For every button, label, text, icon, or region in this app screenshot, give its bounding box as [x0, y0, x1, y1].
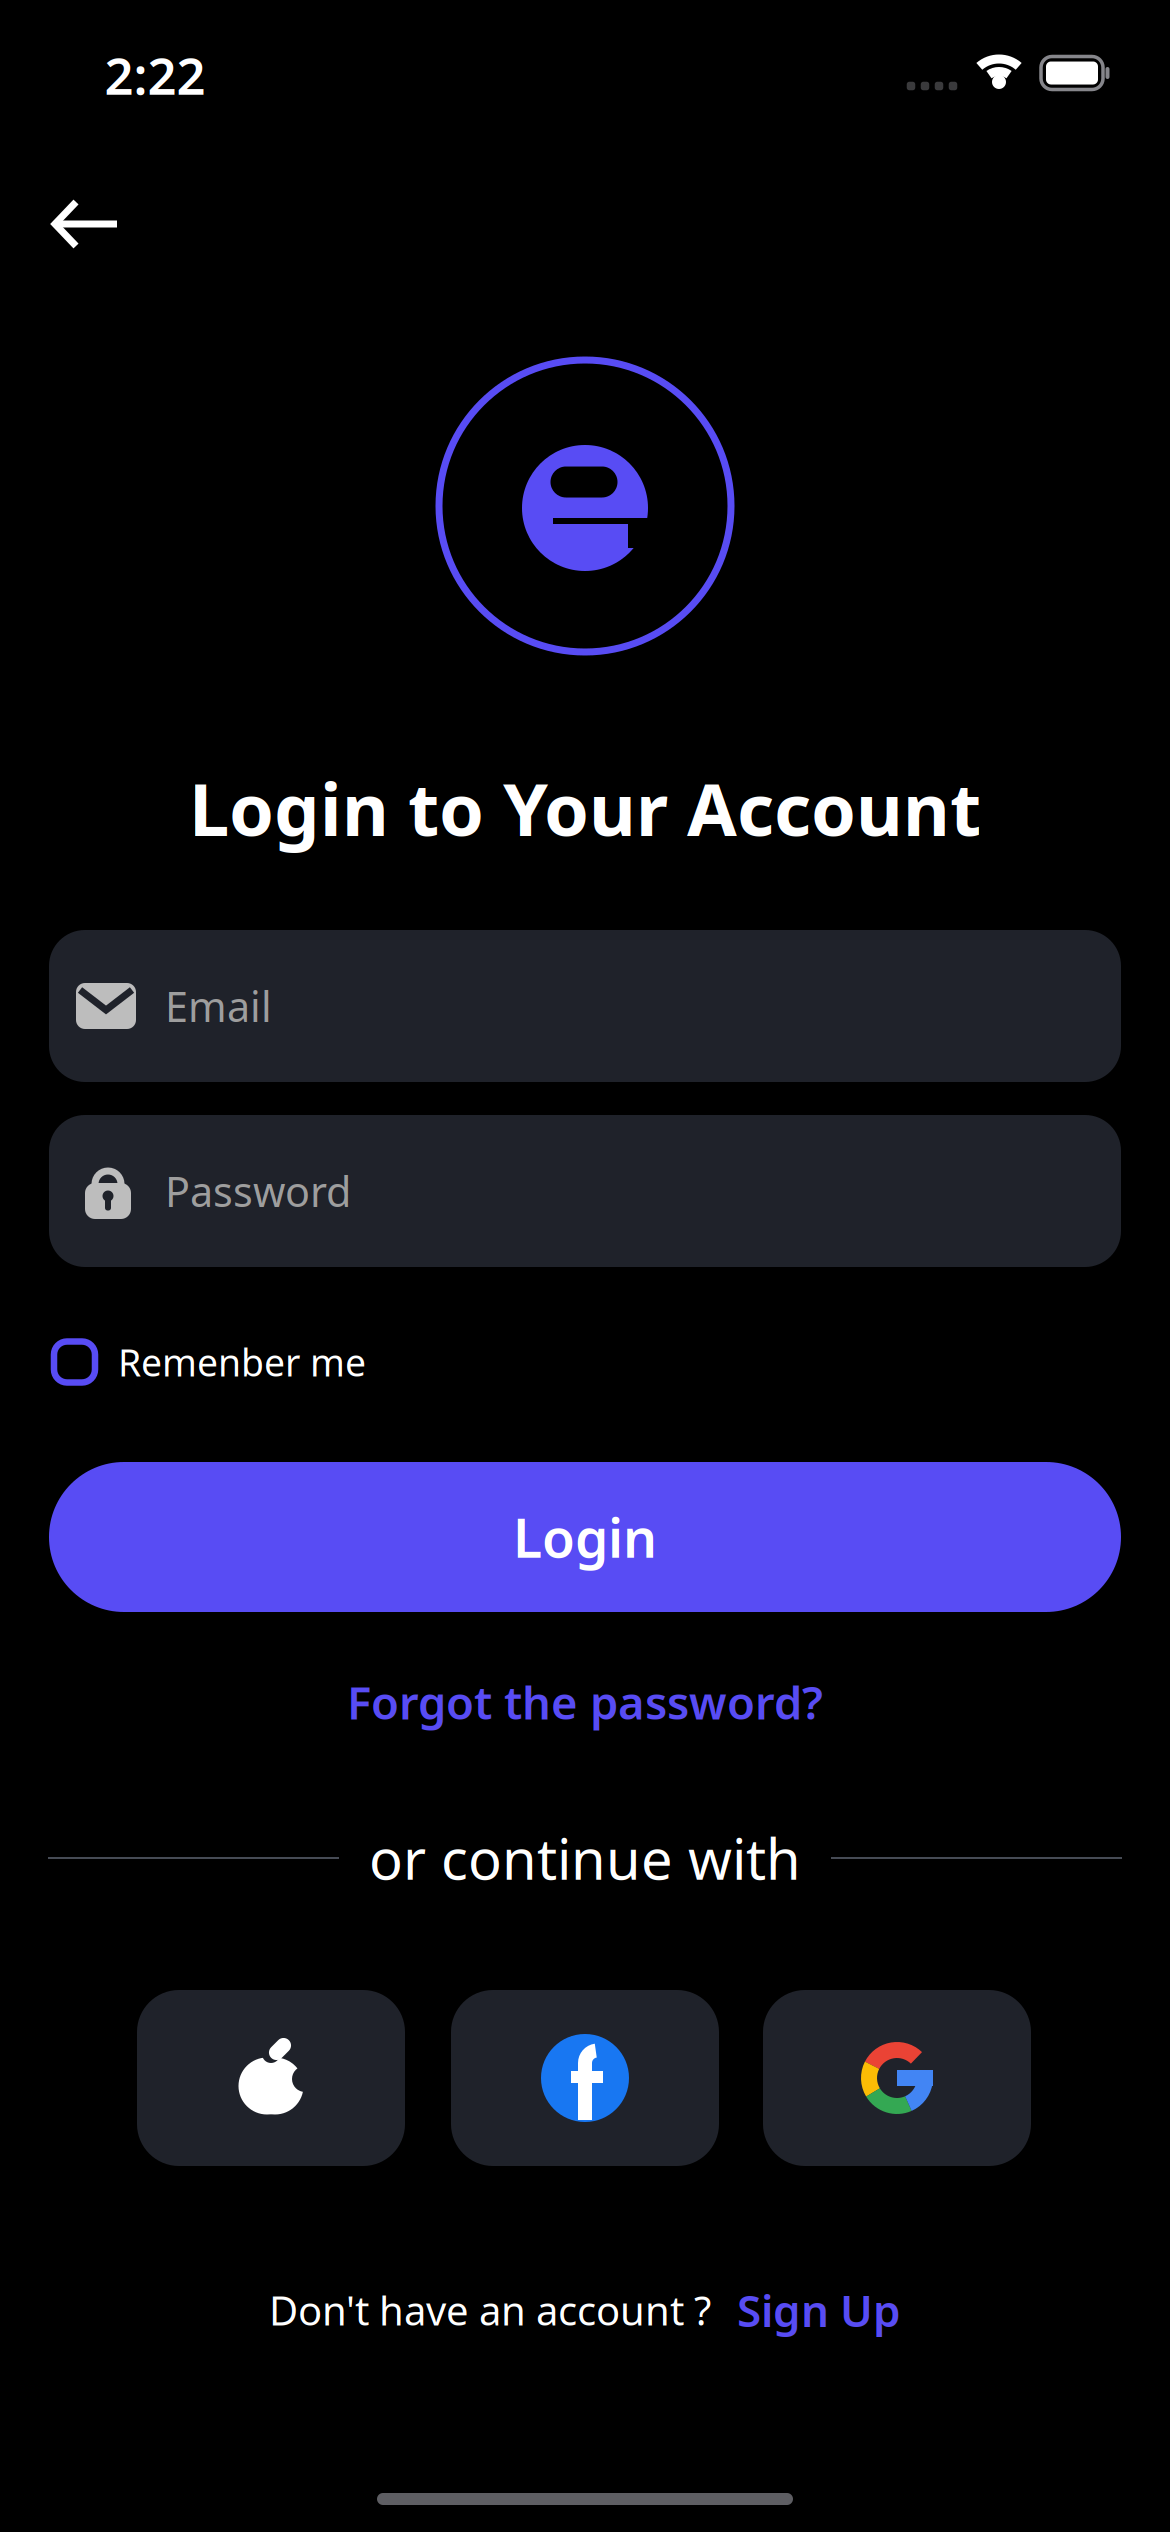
button[interactable]: Remenber me — [49, 1337, 1121, 1387]
staticText: or continue with — [369, 1821, 801, 1895]
staticText: Don't have an account ? — [269, 2283, 711, 2336]
button[interactable]: Email — [49, 930, 1121, 1082]
button[interactable]: Forgot the password? — [347, 1672, 823, 1732]
staticText: Email — [165, 979, 272, 1033]
staticText: Sign Up — [737, 2281, 901, 2339]
button[interactable]: Sign Up — [737, 2281, 901, 2339]
staticText: 2:22 — [104, 41, 205, 109]
staticText: Login — [513, 1502, 657, 1572]
staticText: Login to Your Account — [189, 760, 981, 856]
staticText: Forgot the password? — [347, 1672, 823, 1732]
button[interactable] — [451, 1990, 719, 2166]
button[interactable] — [763, 1990, 1031, 2166]
staticText: Password — [165, 1164, 351, 1218]
staticText: Remenber me — [118, 1337, 366, 1387]
button[interactable]: Login — [49, 1462, 1121, 1612]
button[interactable]: Password — [49, 1115, 1121, 1267]
button[interactable] — [51, 197, 121, 251]
button[interactable] — [137, 1990, 405, 2166]
